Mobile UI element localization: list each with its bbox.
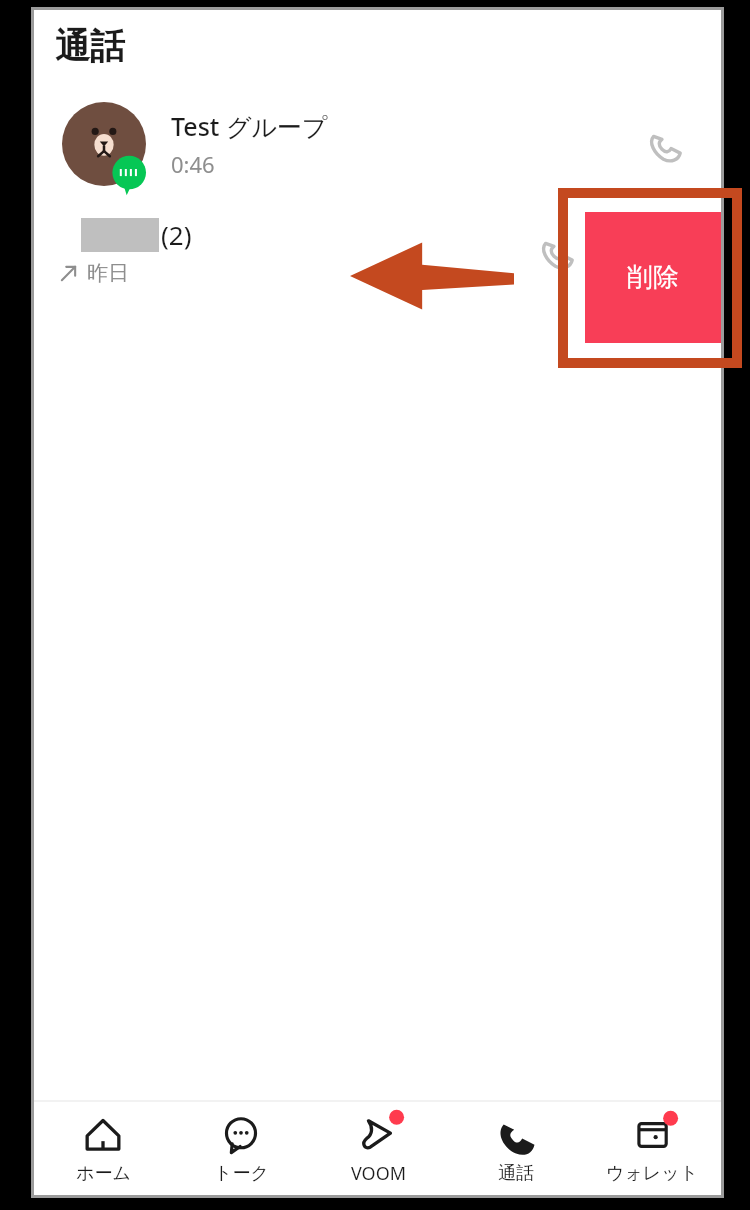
staticText: 削除 (627, 261, 679, 294)
staticText: (2) (161, 217, 192, 252)
button[interactable]: 通話 (447, 1102, 584, 1195)
staticText: 昨日 (87, 260, 129, 286)
staticText: 通話 (498, 1162, 534, 1185)
button[interactable]: Test グループ (34, 96, 721, 192)
staticText: VOOM (351, 1161, 407, 1186)
button[interactable]: ホーム (34, 1102, 172, 1195)
button[interactable]: Call (525, 219, 589, 283)
staticText: 通話 (55, 24, 125, 68)
staticText: Test グループ (171, 109, 328, 143)
button[interactable]: 削除 (585, 212, 721, 343)
button[interactable]: トーク (172, 1102, 310, 1195)
button[interactable]: ウォレット (584, 1102, 721, 1195)
button[interactable]: Call Test group (633, 112, 697, 176)
staticText: ウォレット (606, 1162, 699, 1185)
staticText: 0:46 (171, 149, 215, 179)
staticText: トーク (214, 1162, 269, 1185)
button[interactable]: VOOM (310, 1102, 447, 1195)
button[interactable]: (2) (34, 196, 721, 306)
staticText: ホーム (76, 1162, 131, 1185)
